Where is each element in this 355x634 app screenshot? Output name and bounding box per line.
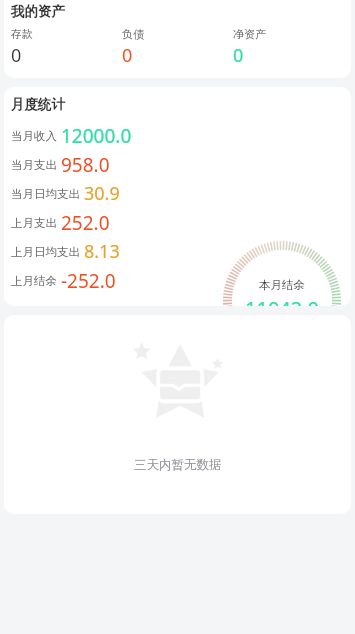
staticText: 30.9: [84, 181, 120, 206]
staticText: 当月收入: [11, 129, 57, 143]
staticText: 负债: [122, 27, 144, 41]
staticText: 958.0: [61, 152, 110, 178]
button[interactable]: 我的资产: [4, 0, 351, 78]
staticText: 252.0: [61, 210, 110, 236]
staticText: 0: [11, 43, 22, 68]
staticText: 8.13: [84, 239, 120, 264]
staticText: 月度统计: [11, 96, 65, 113]
staticText: 当月支出: [11, 158, 57, 172]
button[interactable]: 月度统计: [4, 87, 351, 306]
staticText: 0: [122, 43, 133, 68]
other: No data: [123, 333, 233, 443]
staticText: 上月结余: [11, 274, 57, 288]
staticText: 0: [233, 43, 244, 68]
staticText: 11042.0: [245, 295, 319, 306]
staticText: 我的资产: [11, 3, 65, 20]
button[interactable]: No data: [4, 315, 351, 514]
staticText: 净资产: [233, 27, 266, 41]
staticText: 存款: [11, 27, 33, 41]
staticText: 本月结余: [259, 278, 305, 292]
staticText: 上月支出: [11, 216, 57, 230]
staticText: 上月日均支出: [11, 245, 80, 259]
staticText: 三天内暂无数据: [134, 457, 222, 473]
staticText: 当月日均支出: [11, 187, 80, 201]
staticText: 12000.0: [61, 123, 132, 149]
staticText: -252.0: [61, 268, 116, 294]
